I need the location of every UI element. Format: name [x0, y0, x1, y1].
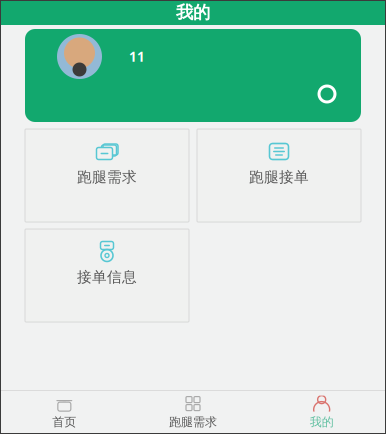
staticText: 接单信息	[77, 268, 137, 286]
staticText: 首页	[52, 415, 76, 429]
staticText: 跑腿接单	[249, 168, 309, 186]
staticText: 跑腿需求	[169, 415, 217, 429]
staticText: 跑腿需求	[77, 168, 137, 186]
button[interactable]: 跑腿需求	[129, 391, 257, 434]
button[interactable]: 接单信息	[25, 229, 189, 322]
staticText: 11	[129, 48, 145, 65]
button[interactable]: Profile	[25, 29, 361, 122]
button[interactable]: 我的	[257, 391, 386, 434]
staticText: 我的	[176, 2, 210, 23]
button[interactable]: 首页	[0, 391, 129, 434]
button[interactable]: 跑腿接单	[197, 129, 361, 222]
staticText: 我的	[310, 415, 334, 429]
button[interactable]: 跑腿需求	[25, 129, 189, 222]
